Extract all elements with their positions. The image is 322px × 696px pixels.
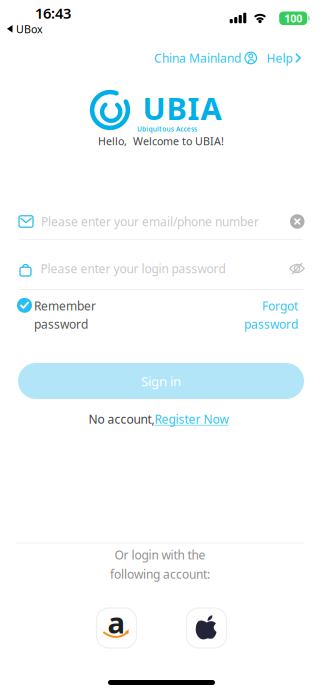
staticText: following account: (110, 566, 210, 582)
staticText: Register Now (154, 411, 228, 427)
staticText: 16:43 (35, 3, 71, 23)
staticText: Remember (34, 298, 96, 314)
button[interactable]: Login with Apple (186, 608, 226, 648)
staticText: UBIA (142, 88, 221, 128)
button[interactable]: Forgot (244, 298, 298, 332)
staticText: 100 (284, 11, 302, 25)
staticText: Hello, Welcome to UBIA! (98, 134, 224, 148)
button[interactable]: China Mainland (154, 50, 256, 66)
button[interactable]: Remember (17, 298, 96, 332)
button[interactable]: Show password (289, 262, 305, 274)
staticText: China Mainland (154, 50, 241, 66)
staticText: Or login with the (114, 547, 205, 563)
button[interactable]: Sign in (18, 363, 304, 399)
staticText: No account, (88, 411, 154, 427)
staticText: Forgot (262, 298, 298, 314)
button[interactable]: Clear text (290, 214, 304, 229)
button[interactable]: Help (266, 50, 301, 66)
staticText: password (34, 316, 88, 332)
staticText: Please enter your login password (40, 260, 225, 276)
staticText: UBox (16, 22, 43, 36)
staticText: a (107, 602, 125, 641)
button[interactable]: Register Now (154, 411, 228, 427)
staticText: Please enter your email/phone number (41, 213, 259, 229)
staticText: password (244, 316, 298, 332)
staticText: Sign in (141, 372, 181, 390)
button[interactable]: Login with Amazon (96, 608, 136, 648)
staticText: Ubiquitous Access (137, 125, 197, 133)
staticText: Help (266, 50, 292, 66)
